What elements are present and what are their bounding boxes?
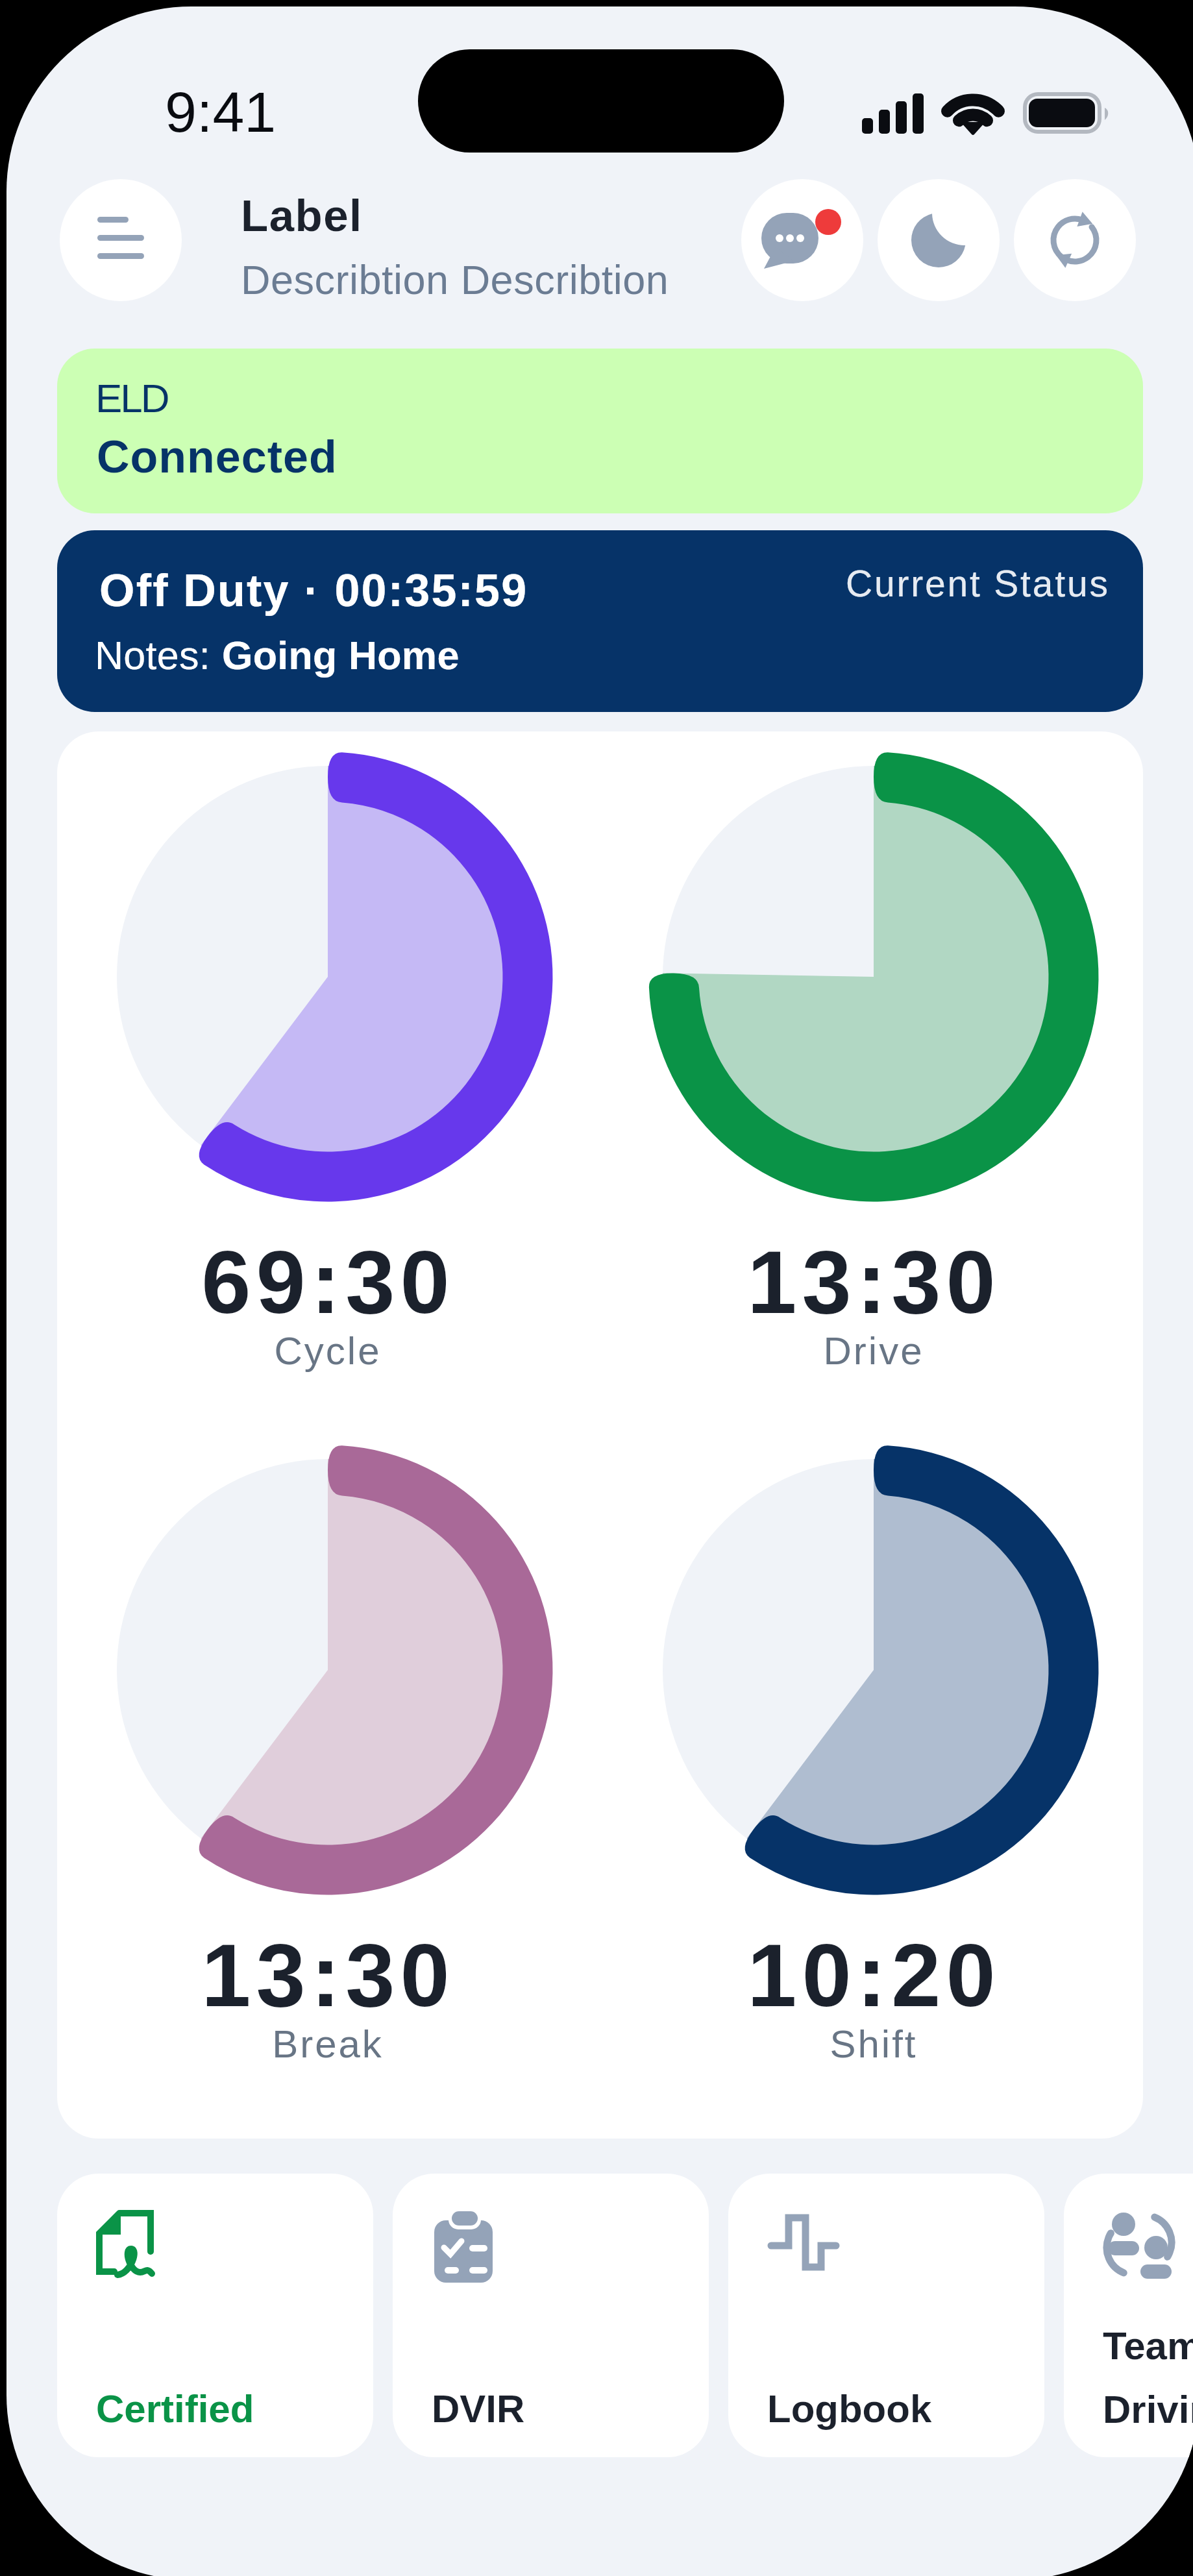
button[interactable]: ELD [57, 349, 1143, 513]
button[interactable]: Certified [57, 2174, 373, 2457]
button[interactable]: 69:30 [103, 752, 553, 1375]
staticText: Shift [830, 2022, 918, 2066]
button[interactable]: Off Duty · 00:35:59 [57, 530, 1143, 712]
staticText: 10:20 [747, 1926, 1001, 2025]
staticText: Off Duty · 00:35:59 [99, 565, 528, 616]
button[interactable]: Team Driving [1064, 2174, 1193, 2457]
button[interactable]: 13:30 [103, 1445, 553, 2068]
staticText: Connected [97, 432, 338, 482]
staticText: Label [241, 191, 363, 241]
staticText: Going Home [222, 633, 460, 678]
staticText: Logbook [767, 2387, 932, 2431]
staticText: Certified [96, 2387, 254, 2431]
button[interactable]: 10:20 [648, 1445, 1099, 2068]
staticText: 69:30 [201, 1233, 455, 1332]
staticText: Current Status [846, 563, 1110, 604]
button[interactable]: Do not disturb [878, 179, 1000, 301]
staticText: Cycle [274, 1329, 382, 1373]
button[interactable]: Messages [741, 179, 863, 301]
button[interactable]: Logbook [728, 2174, 1044, 2457]
button[interactable]: 13:30 [648, 752, 1099, 1375]
staticText: Notes: [95, 633, 222, 678]
staticText: Team Driving [1103, 2324, 1193, 2431]
staticText: DVIR [432, 2387, 525, 2431]
staticText: ELD [95, 376, 168, 421]
button[interactable]: DVIR [393, 2174, 709, 2457]
staticText: Break [272, 2022, 384, 2066]
staticText: 13:30 [747, 1233, 1001, 1332]
button[interactable]: Refresh [1014, 179, 1136, 301]
staticText: 13:30 [201, 1926, 455, 2025]
button[interactable]: Open navigation menu [60, 179, 182, 301]
staticText: Describtion Describtion [241, 257, 669, 302]
staticText: Drive [823, 1329, 924, 1373]
staticText: 9:41 [165, 80, 277, 143]
